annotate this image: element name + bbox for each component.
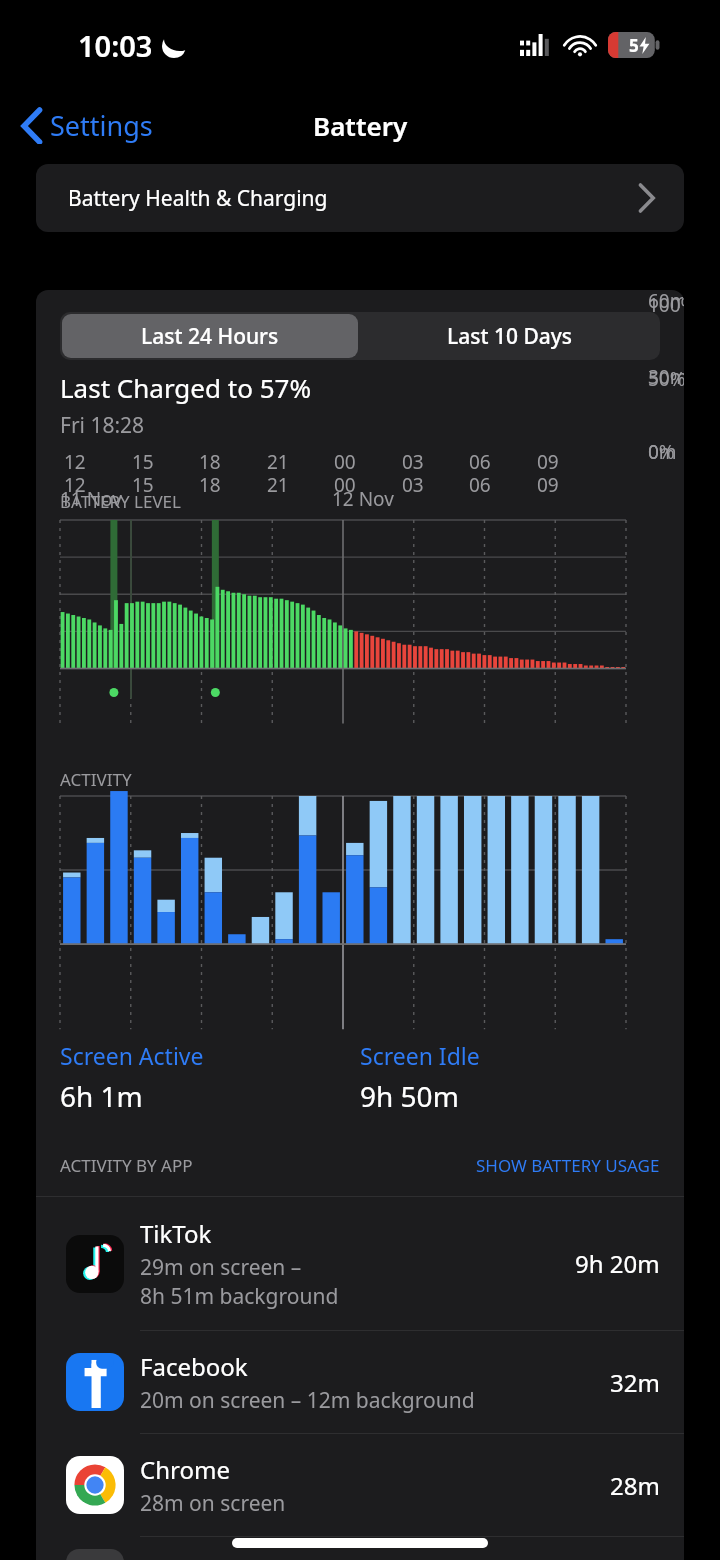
staticText: 0% [648, 439, 675, 465]
staticText: 28m [610, 1469, 660, 1502]
button[interactable]: TikTok [36, 1197, 684, 1330]
staticText: 15 [132, 472, 154, 498]
button[interactable]: Screen Active [60, 1040, 360, 1115]
staticText: 00 [334, 449, 356, 475]
staticText: 21 [267, 449, 289, 475]
button[interactable]: Last 24 Hours [62, 314, 358, 358]
staticText: 11 Nov [60, 486, 122, 512]
staticText: 12 [64, 449, 86, 475]
staticText: 29m on screen – [140, 1253, 302, 1282]
button[interactable]: SHOW BATTERY USAGE [476, 1154, 660, 1177]
button[interactable]: Settings [18, 107, 157, 144]
staticText: 32m [610, 1366, 660, 1399]
button[interactable]: Facebook [36, 1331, 684, 1433]
button[interactable]: Battery Health & Charging [36, 164, 684, 232]
staticText: 20m on screen – 12m background [140, 1386, 475, 1415]
staticText: 18 [199, 449, 221, 475]
staticText: Last 10 Days [447, 322, 573, 351]
staticText: BATTERY LEVEL [60, 490, 181, 513]
staticText: 03 [402, 449, 424, 475]
staticText: 8h 51m background [140, 1282, 339, 1311]
staticText: 09 [537, 449, 559, 475]
staticText: 6h 1m [60, 1077, 143, 1115]
button[interactable]: Screen Idle [360, 1040, 480, 1115]
staticText: Screen Idle [360, 1040, 480, 1071]
staticText: 12 Nov [332, 486, 394, 512]
staticText: 00 [334, 472, 356, 498]
staticText: Settings [50, 107, 153, 144]
staticText: 100% [648, 292, 684, 318]
staticText: 30m [648, 364, 684, 390]
staticText: Fri 18:28 [60, 411, 145, 440]
staticText: ACTIVITY BY APP [60, 1154, 193, 1177]
staticText: 06 [469, 472, 491, 498]
staticText: 0m [648, 439, 677, 465]
staticText: Last Charged to 57% [60, 370, 312, 405]
staticText: 9h 50m [360, 1077, 459, 1115]
staticText: ACTIVITY [60, 768, 132, 791]
staticText: 50% [648, 366, 684, 392]
button[interactable]: Chrome [36, 1434, 684, 1536]
staticText: Battery [313, 108, 408, 143]
staticText: 18 [199, 472, 221, 498]
staticText: 15 [132, 449, 154, 475]
staticText: 10:03 [78, 26, 153, 65]
staticText: TikTok [140, 1217, 212, 1250]
staticText: Facebook [140, 1350, 248, 1383]
staticText: 09 [537, 472, 559, 498]
staticText: 12 [64, 472, 86, 498]
staticText: 60m [648, 290, 684, 314]
staticText: 5 [629, 34, 639, 57]
button[interactable]: M [36, 1537, 684, 1560]
staticText: Screen Active [60, 1040, 204, 1071]
button[interactable]: Last 10 Days [360, 312, 660, 360]
staticText: 06 [469, 449, 491, 475]
staticText: 28m on screen [140, 1489, 286, 1518]
staticText: SHOW BATTERY USAGE [476, 1154, 660, 1177]
staticText: 21 [267, 472, 289, 498]
staticText: 03 [402, 472, 424, 498]
staticText: 9h 20m [575, 1247, 660, 1280]
staticText: Last 24 Hours [141, 322, 279, 351]
staticText: Chrome [140, 1453, 230, 1486]
staticText: Battery Health & Charging [68, 184, 328, 213]
